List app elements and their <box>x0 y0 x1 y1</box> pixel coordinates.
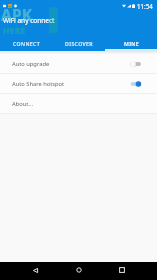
staticText: MINE <box>124 40 139 47</box>
button[interactable]: Auto Share hotspot <box>0 74 157 94</box>
button[interactable]: DISCOVER <box>53 33 105 51</box>
button[interactable]: Auto upgrade <box>0 54 157 74</box>
button[interactable]: About... <box>0 94 157 114</box>
button[interactable]: CONNECT <box>0 33 53 51</box>
button[interactable]: Recents <box>113 261 131 279</box>
staticText: WiFi any connect <box>3 16 55 25</box>
staticText: About... <box>12 100 33 108</box>
staticText: DISCOVER <box>65 40 93 47</box>
staticText: 11:54 <box>137 2 153 10</box>
button[interactable]: Home <box>70 261 88 279</box>
staticText: HERE <box>3 25 26 37</box>
staticText: Auto upgrade <box>12 60 50 68</box>
staticText: CONNECT <box>13 40 40 47</box>
staticText: Auto Share hotspot <box>12 80 65 88</box>
staticText: APK <box>1 4 33 25</box>
button[interactable]: Back <box>26 261 44 279</box>
button[interactable]: MINE <box>105 33 157 51</box>
